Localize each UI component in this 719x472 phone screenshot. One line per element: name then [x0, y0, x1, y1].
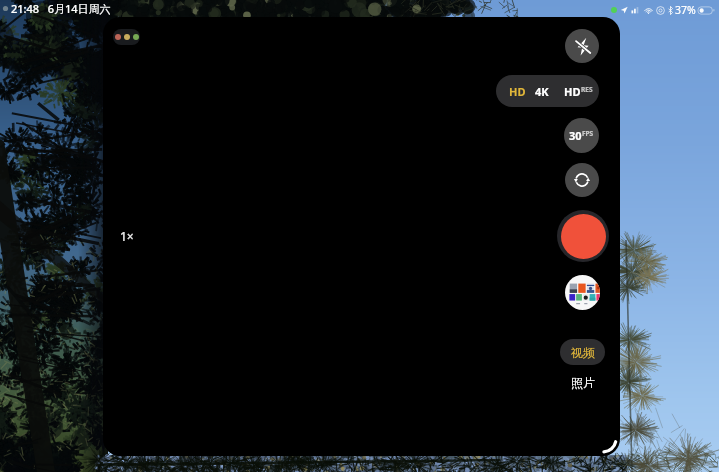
button[interactable]: 1×: [117, 225, 137, 247]
staticText: 37%: [675, 3, 696, 17]
button[interactable]: 4K: [526, 75, 558, 107]
button[interactable]: 30: [564, 118, 599, 153]
button[interactable]: HD: [496, 75, 526, 107]
staticText: 21:48 6月14日周六: [11, 1, 111, 16]
staticText: FPS: [582, 129, 594, 138]
staticText: HD: [509, 84, 526, 99]
button[interactable]: 视频: [560, 339, 605, 365]
staticText: 照片: [571, 375, 595, 390]
staticText: 4K: [535, 84, 549, 99]
staticText: HD: [564, 84, 581, 99]
button[interactable]: Gallery: [565, 275, 600, 310]
staticText: 1×: [120, 228, 134, 244]
button[interactable]: 照片: [560, 372, 605, 392]
button[interactable]: Record: [557, 210, 609, 262]
staticText: 30: [569, 128, 582, 143]
staticText: RES: [581, 85, 593, 94]
button[interactable]: Switch camera: [565, 163, 599, 197]
staticText: 视频: [571, 345, 595, 360]
button[interactable]: Flash off: [565, 29, 599, 63]
button[interactable]: HD: [558, 75, 599, 107]
button[interactable]: Window controls: [113, 29, 140, 45]
